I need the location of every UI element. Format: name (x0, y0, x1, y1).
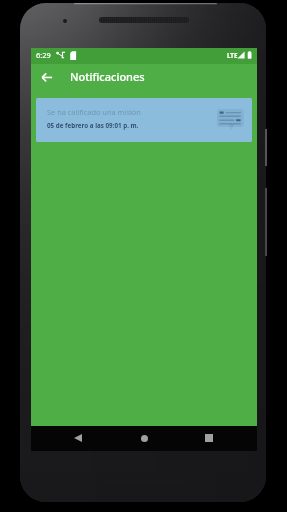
staticText: 05 de febrero a las 09:01 p. m. (47, 121, 139, 130)
button[interactable]: Back (35, 65, 59, 89)
staticText: LTE (227, 51, 238, 59)
button[interactable]: Home (135, 429, 153, 447)
button[interactable]: Back (69, 429, 87, 447)
staticText: Notificaciones (70, 69, 145, 84)
button[interactable]: Se ha calificado una misión (36, 98, 252, 142)
staticText: Se ha calificado una misión (47, 107, 141, 117)
button[interactable]: Recent apps (200, 429, 218, 447)
staticText: 6:29 (36, 50, 51, 60)
